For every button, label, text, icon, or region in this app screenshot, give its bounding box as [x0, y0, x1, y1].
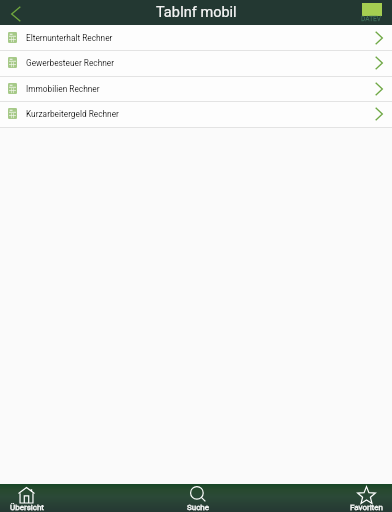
button[interactable]: Suche: [171, 484, 224, 512]
button[interactable]: Immobilien Rechner: [0, 76, 392, 101]
staticText: Favoriten: [350, 503, 383, 512]
staticText: Gewerbesteuer Rechner: [26, 58, 115, 68]
button[interactable]: Elternunterhalt Rechner: [0, 25, 392, 50]
staticText: Übersicht: [10, 503, 44, 512]
button[interactable]: Übersicht: [0, 484, 53, 512]
button[interactable]: DATEV: [355, 0, 388, 25]
button[interactable]: Back: [0, 0, 34, 25]
staticText: TabInf mobil: [156, 4, 237, 21]
button[interactable]: Gewerbesteuer Rechner: [0, 50, 392, 75]
staticText: DATEV: [361, 15, 382, 23]
button[interactable]: Kurzarbeitergeld Rechner: [0, 101, 392, 126]
staticText: Elternunterhalt Rechner: [26, 33, 113, 43]
staticText: Immobilien Rechner: [26, 84, 100, 94]
staticText: Kurzarbeitergeld Rechner: [26, 109, 119, 119]
button[interactable]: Favoriten: [340, 484, 392, 512]
staticText: Suche: [187, 503, 209, 512]
